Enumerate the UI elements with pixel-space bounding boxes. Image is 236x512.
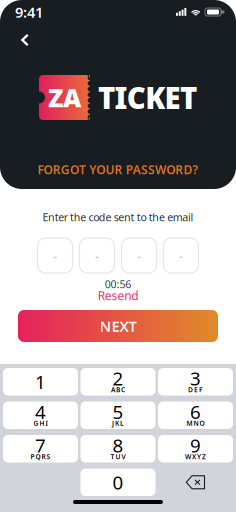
button[interactable]: Code digit: [79, 238, 114, 273]
staticText: 2: [112, 366, 123, 391]
staticText: 5: [112, 399, 123, 424]
button[interactable]: Code digit: [37, 238, 72, 273]
staticText: TICKET: [98, 78, 197, 117]
staticText: Resend: [98, 287, 138, 303]
button[interactable]: 2: [80, 368, 155, 395]
staticText: -: [179, 247, 183, 264]
staticText: -: [53, 247, 57, 264]
staticText: TUV: [110, 452, 125, 461]
staticText: ABC: [111, 385, 125, 394]
button[interactable]: 7: [3, 435, 78, 462]
button[interactable]: 0: [80, 468, 155, 496]
staticText: 6: [190, 399, 201, 424]
staticText: GHI: [33, 419, 47, 428]
button[interactable]: Delete: [158, 468, 233, 496]
button[interactable]: 4: [3, 401, 78, 429]
button[interactable]: NEXT: [0, 310, 236, 342]
staticText: ZA: [48, 81, 81, 114]
button[interactable]: Resend: [98, 289, 138, 302]
staticText: JKL: [112, 419, 124, 428]
staticText: WXYZ: [185, 452, 206, 461]
staticText: 1: [35, 369, 46, 394]
staticText: 7: [35, 433, 46, 458]
staticText: DEF: [188, 385, 203, 394]
button[interactable]: Back: [12, 29, 38, 51]
staticText: 9:41: [15, 2, 43, 22]
staticText: MNO: [186, 419, 204, 428]
staticText: 0: [112, 470, 123, 495]
button[interactable]: 5: [80, 401, 155, 429]
staticText: 9: [190, 433, 201, 458]
staticText: PQRS: [30, 452, 50, 461]
staticText: 3: [190, 366, 201, 391]
staticText: FORGOT YOUR PASSWORD?: [37, 161, 198, 177]
button[interactable]: 6: [158, 401, 233, 429]
staticText: 4: [35, 399, 46, 424]
staticText: -: [137, 247, 141, 264]
staticText: NEXT: [99, 316, 136, 336]
button[interactable]: 9: [158, 435, 233, 462]
staticText: 8: [112, 433, 123, 458]
button[interactable]: Code digit: [163, 238, 198, 273]
staticText: Enter the code sent to the email: [42, 210, 194, 224]
button[interactable]: 1: [3, 368, 78, 395]
button[interactable]: 3: [158, 368, 233, 395]
staticText: -: [95, 247, 99, 264]
button[interactable]: 8: [80, 435, 155, 462]
staticText: 00:56: [105, 277, 131, 291]
button[interactable]: Code digit: [121, 238, 156, 273]
